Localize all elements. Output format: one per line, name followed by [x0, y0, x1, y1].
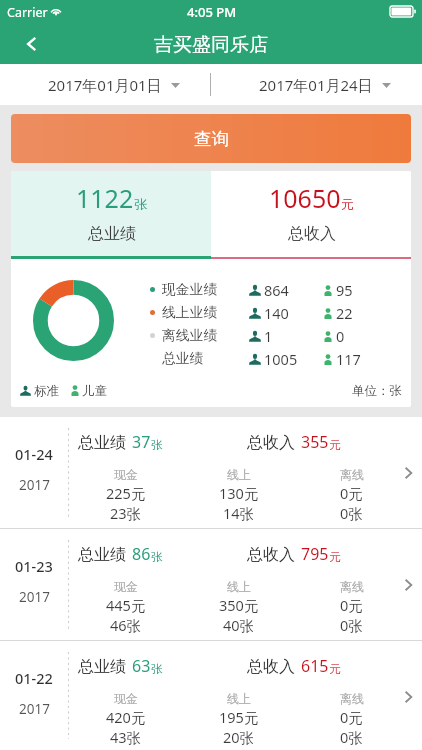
staticText: 615: [301, 655, 329, 677]
staticText: 2017: [19, 588, 50, 606]
button[interactable]: 01-24: [0, 417, 422, 528]
staticText: 元: [329, 550, 341, 564]
staticText: 1: [264, 326, 273, 346]
staticText: 张: [151, 662, 163, 676]
staticText: 离线业绩: [162, 327, 218, 344]
staticText: 离线: [340, 691, 364, 706]
staticText: 01-22: [15, 668, 53, 688]
staticText: 0张: [340, 615, 363, 635]
staticText: 总收入: [288, 224, 336, 244]
staticText: 张: [134, 196, 147, 212]
staticText: 线上: [227, 691, 251, 706]
staticText: 43张: [110, 727, 142, 747]
staticText: 元: [329, 438, 341, 452]
staticText: 儿童: [82, 383, 107, 399]
staticText: 445元: [106, 595, 146, 615]
staticText: 864: [264, 280, 289, 300]
button[interactable]: 查询: [11, 114, 411, 163]
staticText: 40张: [223, 615, 255, 635]
staticText: 4:05 PM: [187, 3, 237, 21]
staticText: 1122: [76, 181, 134, 215]
staticText: 现金: [114, 467, 138, 482]
staticText: 总业绩: [88, 224, 136, 244]
staticText: 线上业绩: [162, 304, 218, 321]
staticText: 总业绩: [78, 545, 126, 565]
staticText: 总收入: [247, 545, 295, 565]
staticText: 张: [151, 550, 163, 564]
staticText: 离线: [340, 467, 364, 482]
button[interactable]: 10650: [211, 171, 411, 259]
staticText: 2017: [19, 700, 50, 718]
staticText: 355: [301, 431, 329, 453]
staticText: 单位：张: [352, 383, 402, 399]
staticText: 10650: [269, 181, 341, 215]
staticText: 元: [329, 662, 341, 676]
staticText: 420元: [106, 707, 146, 727]
button[interactable]: 01-22: [0, 641, 422, 750]
staticText: 2017年01月01日: [48, 75, 162, 95]
staticText: 86: [132, 543, 151, 565]
button[interactable]: 2017年01月24日: [211, 64, 422, 105]
staticText: 离线: [340, 579, 364, 594]
staticText: 总收入: [247, 657, 295, 677]
staticText: 0元: [340, 595, 363, 615]
staticText: Carrier: [7, 4, 48, 21]
button[interactable]: Back: [0, 24, 50, 64]
staticText: 0张: [340, 727, 363, 747]
staticText: 140: [264, 303, 289, 323]
staticText: 2017年01月24日: [259, 75, 373, 95]
button[interactable]: 1122: [11, 171, 211, 259]
staticText: 46张: [110, 615, 142, 635]
staticText: 现金业绩: [162, 281, 218, 298]
staticText: 117: [336, 349, 361, 369]
staticText: 总业绩: [162, 350, 204, 367]
staticText: 195元: [219, 707, 259, 727]
staticText: 元: [341, 196, 354, 212]
staticText: 0: [336, 326, 345, 346]
staticText: 0元: [340, 707, 363, 727]
staticText: 线上: [227, 579, 251, 594]
staticText: 350元: [219, 595, 259, 615]
staticText: 查询: [194, 128, 229, 150]
staticText: 14张: [223, 503, 255, 523]
staticText: 37: [132, 431, 151, 453]
staticText: 95: [336, 280, 353, 300]
staticText: 22: [336, 303, 353, 323]
staticText: 01-23: [15, 556, 53, 576]
staticText: 吉买盛同乐店: [154, 33, 268, 57]
staticText: 23张: [110, 503, 142, 523]
staticText: 795: [301, 543, 329, 565]
staticText: 0张: [340, 503, 363, 523]
staticText: 张: [151, 438, 163, 452]
staticText: 225元: [106, 483, 146, 503]
staticText: 130元: [219, 483, 259, 503]
staticText: 2017: [19, 476, 50, 494]
staticText: 总收入: [247, 433, 295, 453]
staticText: 总业绩: [78, 657, 126, 677]
button[interactable]: 2017年01月01日: [0, 64, 210, 105]
staticText: 63: [132, 655, 151, 677]
button[interactable]: 01-23: [0, 529, 422, 640]
staticText: 现金: [114, 691, 138, 706]
staticText: 01-24: [15, 444, 53, 464]
staticText: 标准: [34, 383, 59, 399]
staticText: 1005: [264, 349, 298, 369]
staticText: 20张: [223, 727, 255, 747]
staticText: 0元: [340, 483, 363, 503]
staticText: 现金: [114, 579, 138, 594]
staticText: 线上: [227, 467, 251, 482]
staticText: 总业绩: [78, 433, 126, 453]
